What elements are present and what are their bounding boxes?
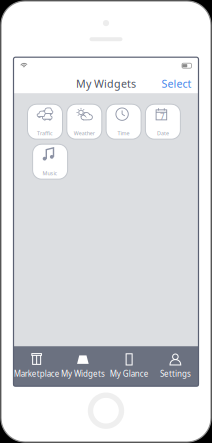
button[interactable]: My Widgets (60, 347, 106, 386)
staticText: Settings (160, 368, 191, 379)
button[interactable]: Traffic (27, 104, 62, 139)
staticText: My Widgets (61, 368, 105, 379)
button[interactable]: Time (106, 104, 141, 139)
button[interactable]: My Glance (106, 347, 152, 386)
button[interactable]: Select (161, 77, 191, 91)
staticText: 7 (160, 111, 165, 122)
staticText: My Glance (110, 368, 149, 379)
staticText: Date (157, 130, 169, 137)
button[interactable]: Marketplace (13, 347, 60, 386)
button[interactable]: Weather (67, 104, 102, 139)
staticText: Traffic (37, 130, 53, 137)
button[interactable]: 7 (145, 104, 180, 139)
staticText: My Widgets (76, 77, 136, 91)
button[interactable]: Music (33, 144, 68, 179)
button[interactable]: Settings (152, 347, 198, 386)
staticText: Marketplace (14, 368, 60, 379)
staticText: Music (43, 170, 58, 177)
staticText: Select (161, 77, 191, 91)
staticText: Time (118, 130, 130, 137)
staticText: Weather (74, 130, 95, 137)
